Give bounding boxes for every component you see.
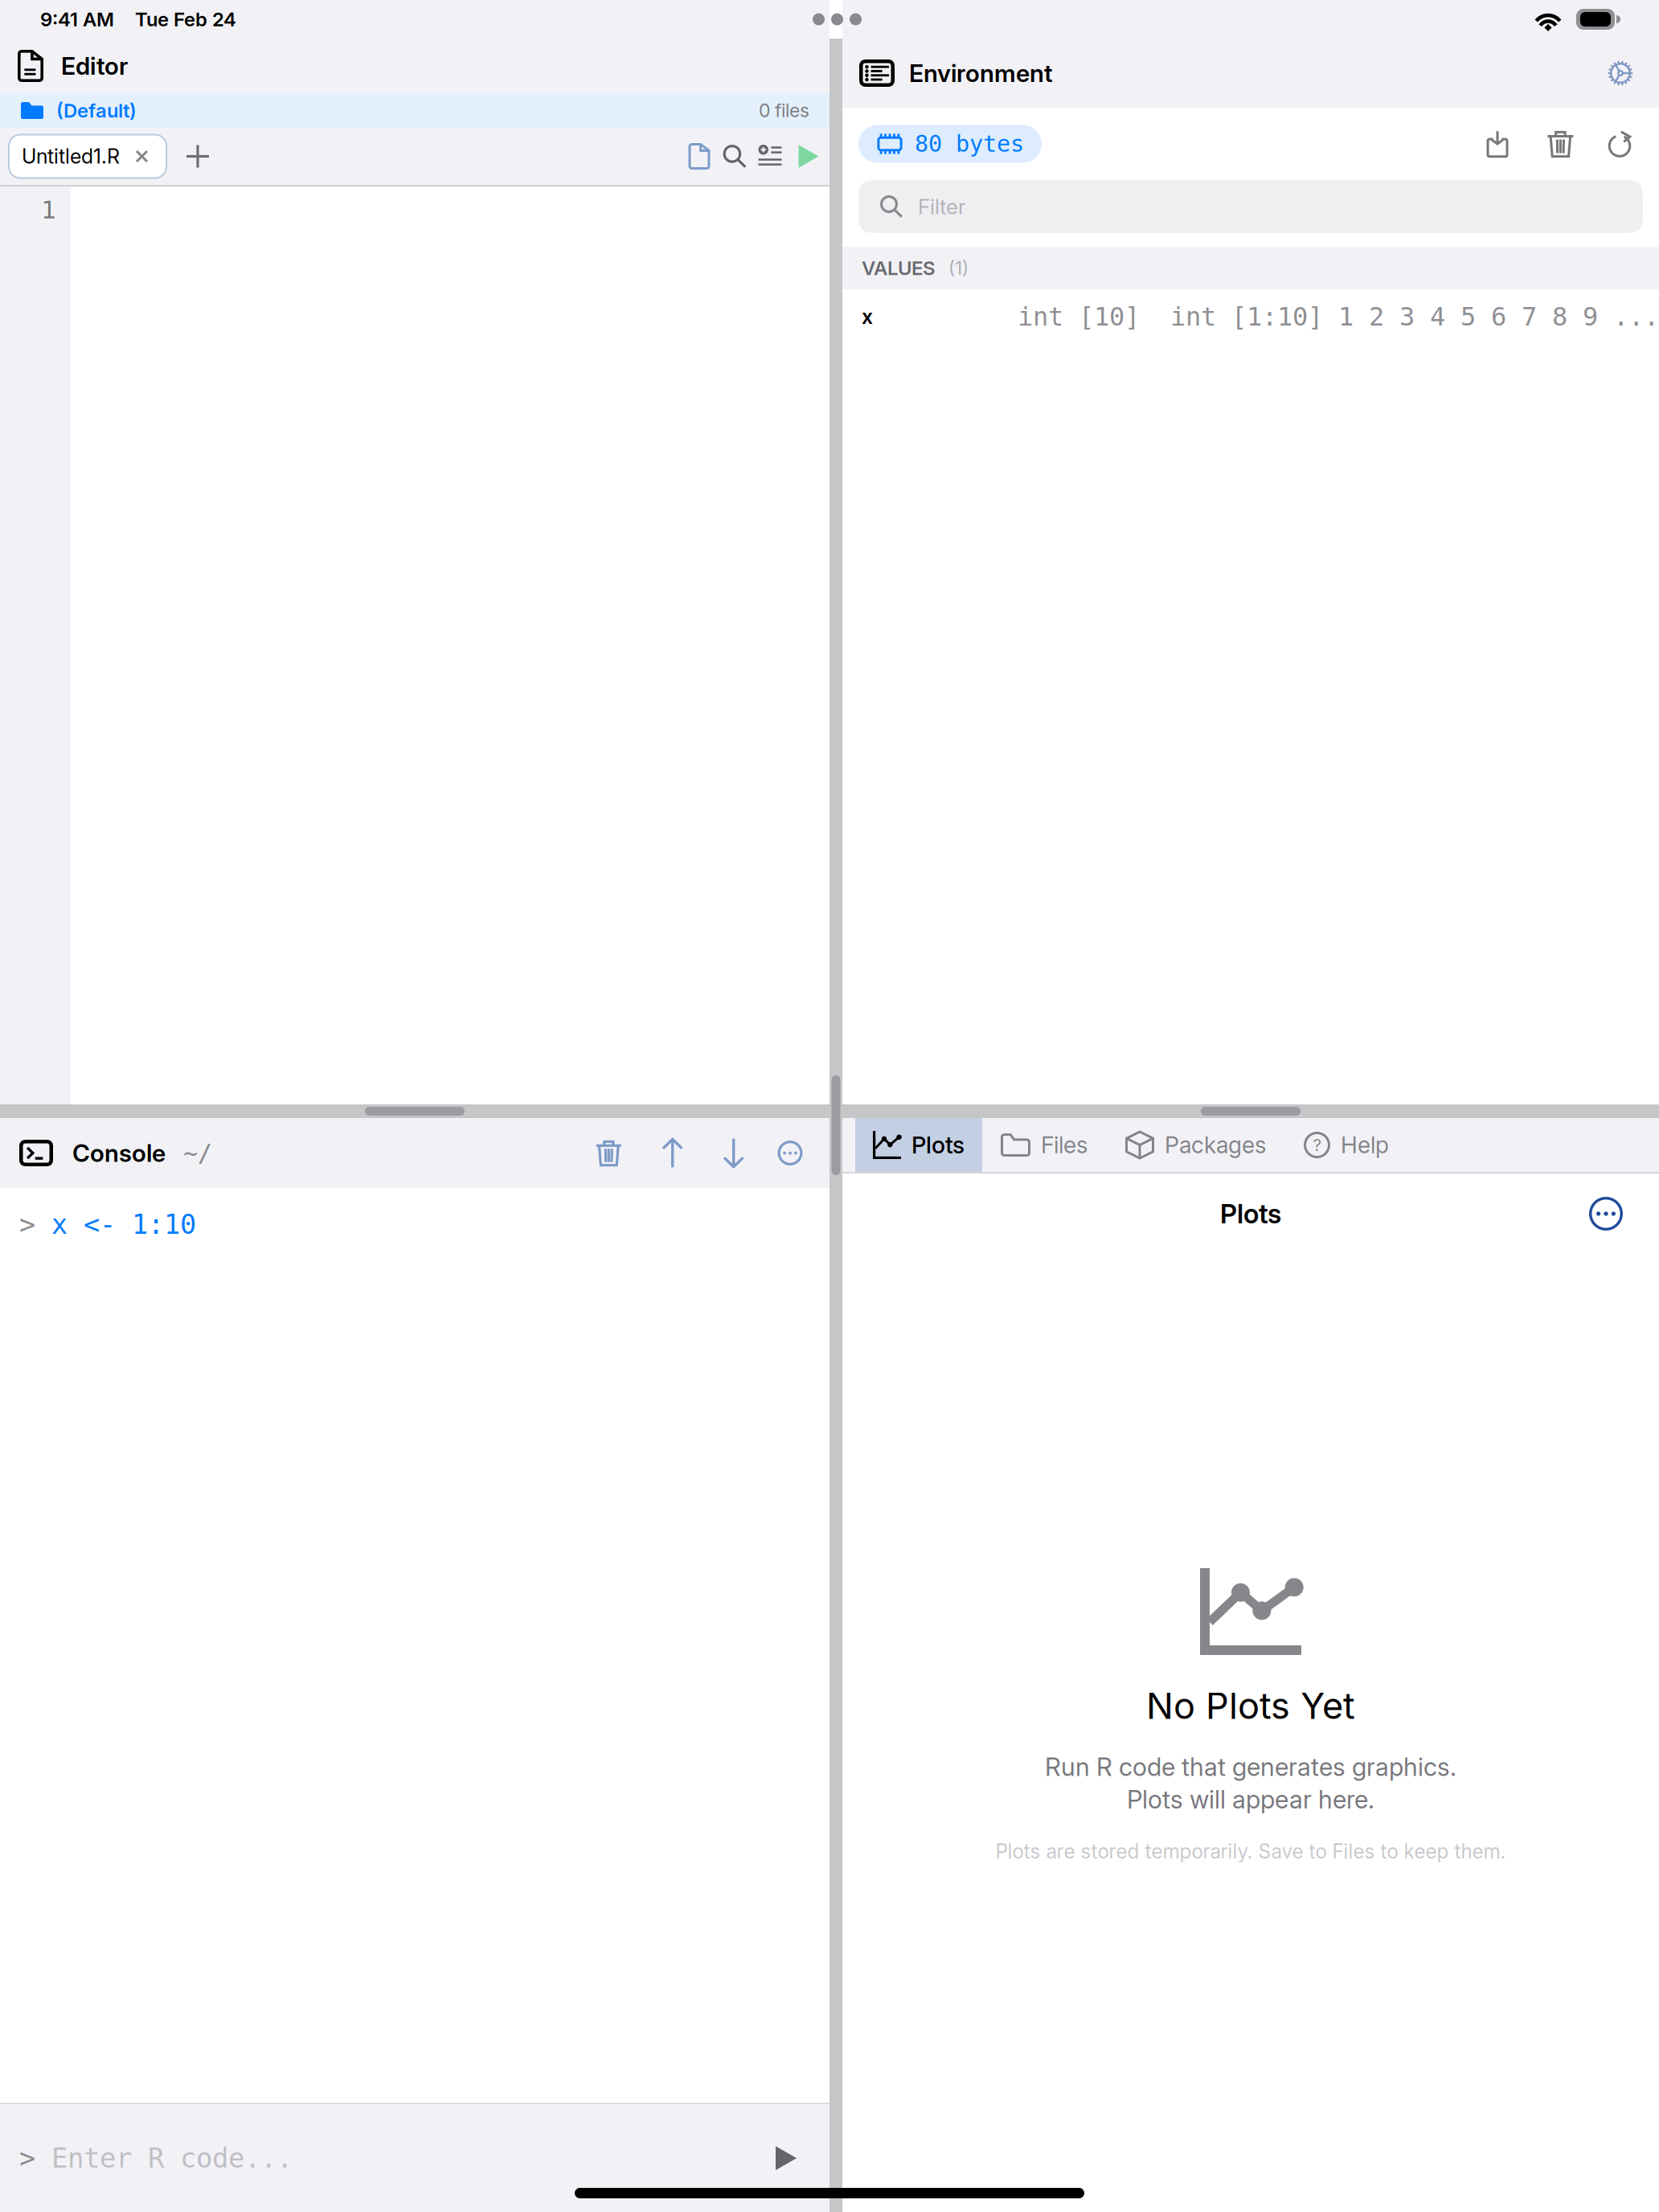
button[interactable]: Run (788, 131, 829, 181)
button[interactable]: Insert chunk (752, 131, 788, 181)
button[interactable]: Untitled1.R (9, 135, 166, 178)
staticText: 1 (41, 195, 56, 224)
staticText: Console (72, 1138, 166, 1168)
staticText: 0 files (759, 99, 809, 122)
staticText: ? (1313, 1135, 1321, 1155)
button[interactable]: New file (166, 131, 229, 181)
staticText: Plots (1220, 1198, 1281, 1230)
button[interactable]: Environment settings (1596, 39, 1645, 108)
staticText: x (862, 305, 873, 329)
button[interactable]: (Default) (0, 93, 829, 128)
staticText: VALUES (862, 256, 936, 280)
staticText: int [10] int [1:10] 1 2 3 4 5 6 7 8 9 ..… (1018, 302, 1659, 332)
staticText: Files (1041, 1131, 1088, 1159)
staticText: Untitled1.R (22, 144, 120, 168)
button[interactable]: Plots (855, 1118, 982, 1172)
button[interactable]: Find (717, 131, 752, 181)
staticText: Plots are stored temporarily. Save to Fi… (995, 1839, 1506, 1863)
staticText: (1) (948, 257, 969, 279)
staticText: Plots (911, 1131, 965, 1159)
staticText: > (19, 1209, 51, 1240)
staticText: 80 bytes (915, 131, 1024, 157)
button[interactable]: Scroll to top (637, 1118, 698, 1188)
button[interactable]: Scroll to bottom (698, 1118, 760, 1188)
staticText: (Default) (56, 99, 137, 122)
button[interactable]: Refresh environment (1589, 113, 1650, 174)
staticText: Tue Feb 24 (135, 8, 236, 31)
button[interactable]: More console options (760, 1118, 821, 1188)
staticText: Run R code that generates graphics. (1045, 1752, 1456, 1782)
staticText: Help (1341, 1131, 1389, 1159)
button[interactable]: ? (1285, 1118, 1407, 1172)
button[interactable]: Run code (754, 2126, 818, 2190)
button[interactable]: Clear environment (1528, 113, 1589, 174)
staticText: No Plots Yet (1146, 1684, 1355, 1728)
staticText: Filter (918, 194, 965, 219)
staticText: Packages (1165, 1131, 1266, 1159)
button[interactable]: Clear console (576, 1118, 637, 1188)
staticText: x <- 1:10 (51, 1209, 196, 1240)
staticText: 9:41 AM (40, 8, 114, 31)
staticText: Plots will appear here. (1127, 1784, 1374, 1815)
button[interactable]: x (842, 289, 1659, 344)
staticText: Environment (909, 59, 1053, 88)
staticText: Enter R code... (51, 2142, 293, 2174)
button[interactable]: New document (682, 131, 717, 181)
staticText: ~/ (183, 1139, 212, 1167)
button[interactable]: Files (982, 1118, 1106, 1172)
staticText: > (19, 2142, 51, 2174)
button[interactable]: Plot options (1570, 1178, 1642, 1250)
button[interactable]: Save workspace (1467, 113, 1528, 174)
button[interactable]: Packages (1106, 1118, 1285, 1172)
staticText: Editor (61, 51, 128, 81)
